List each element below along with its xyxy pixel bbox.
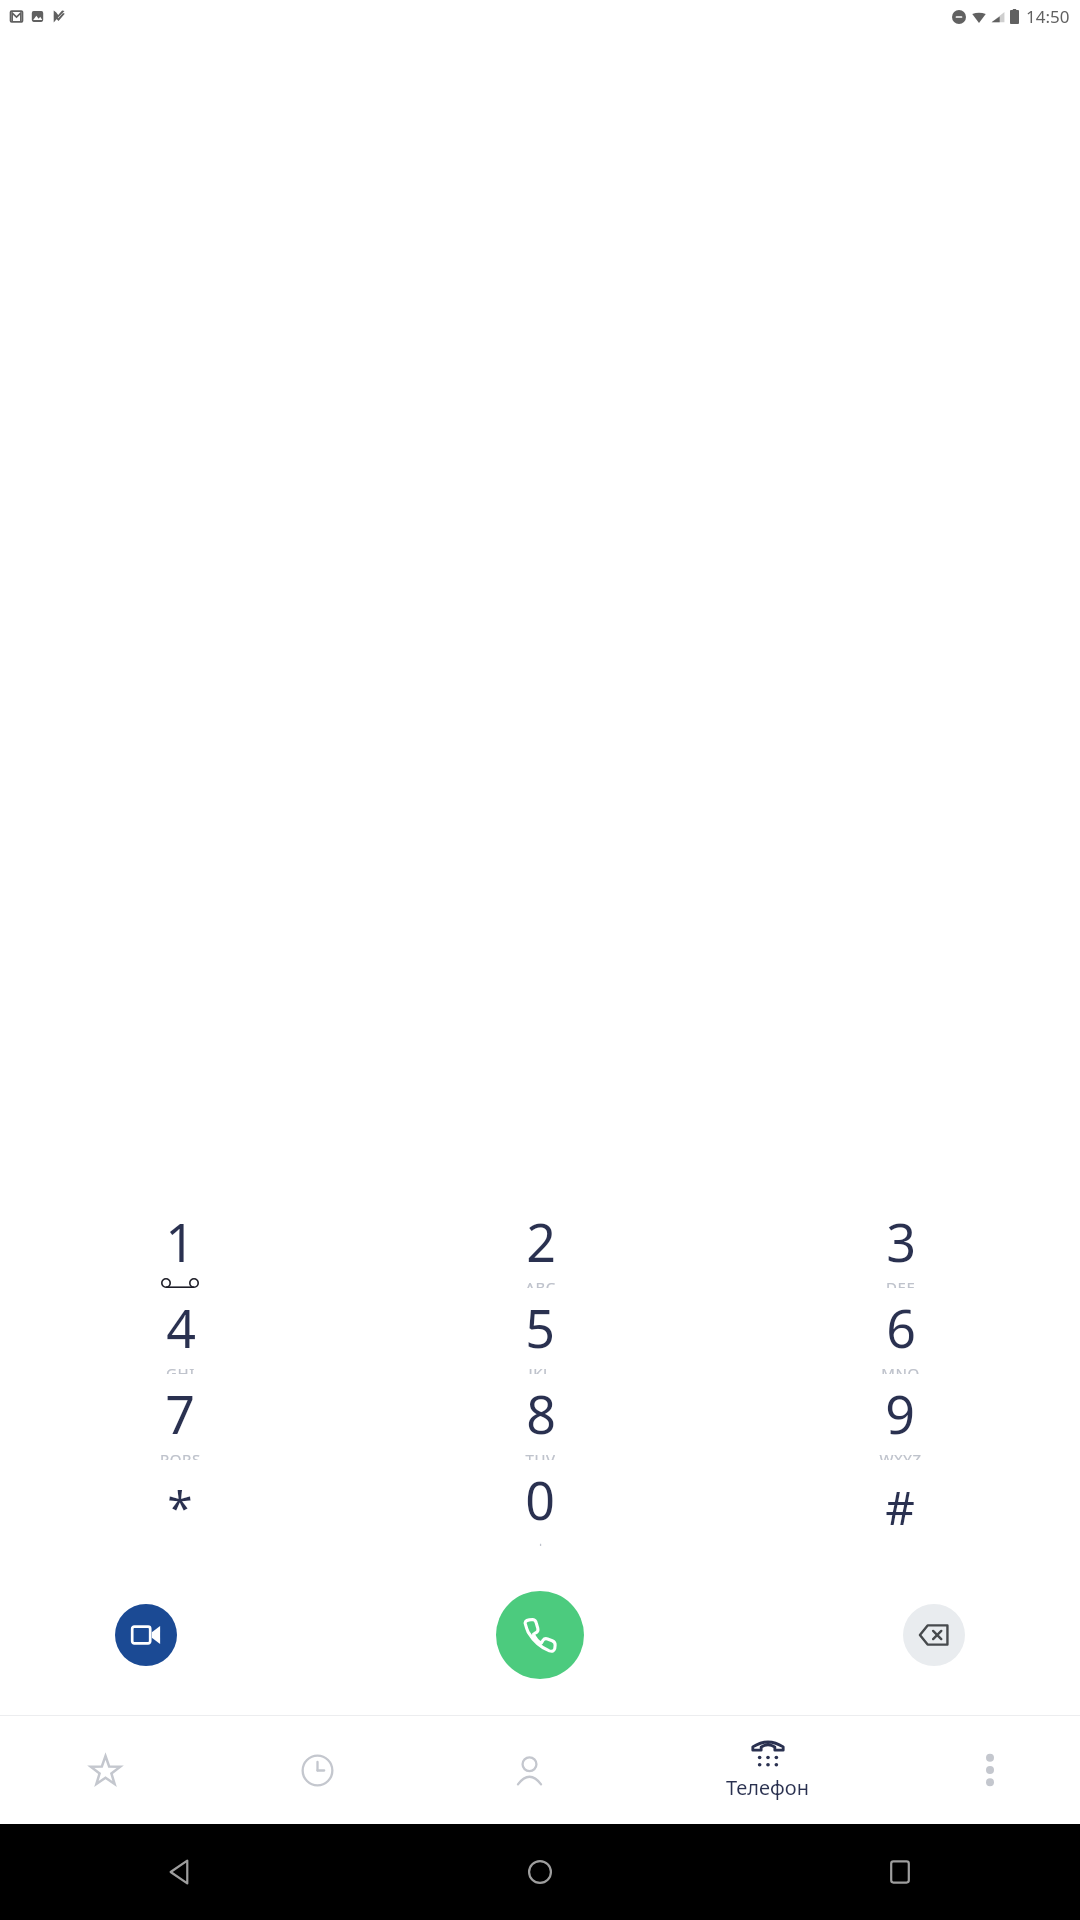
staticText: PQRS: [160, 1449, 201, 1460]
staticText: GHI: [166, 1363, 195, 1374]
staticText: 6: [886, 1292, 916, 1363]
staticText: Телефон: [726, 1774, 809, 1801]
button[interactable]: Video call: [115, 1604, 177, 1666]
button[interactable]: Back: [0, 1824, 360, 1920]
staticText: MNO: [881, 1363, 920, 1374]
button[interactable]: 2: [360, 1202, 720, 1288]
staticText: #: [885, 1476, 915, 1539]
staticText: +: [536, 1537, 545, 1546]
button[interactable]: 8: [360, 1374, 720, 1460]
staticText: 14:50: [1026, 5, 1070, 28]
button[interactable]: #: [720, 1460, 1080, 1546]
button[interactable]: *: [0, 1460, 360, 1546]
staticText: 1: [165, 1206, 195, 1277]
button[interactable]: Recents: [211, 1716, 423, 1824]
button[interactable]: Recents: [720, 1824, 1080, 1920]
staticText: 2: [526, 1206, 556, 1277]
button[interactable]: Телефон: [635, 1716, 900, 1824]
button[interactable]: 1: [0, 1202, 360, 1288]
staticText: 8: [526, 1378, 556, 1449]
staticText: 3: [886, 1206, 916, 1277]
button[interactable]: 9: [720, 1374, 1080, 1460]
staticText: 9: [885, 1378, 915, 1449]
button[interactable]: 6: [720, 1288, 1080, 1374]
button[interactable]: More options: [900, 1716, 1080, 1824]
staticText: JKL: [528, 1363, 552, 1374]
button[interactable]: 4: [0, 1288, 360, 1374]
staticText: WXYZ: [879, 1449, 922, 1460]
staticText: TUV: [525, 1449, 556, 1460]
staticText: ABC: [525, 1277, 556, 1288]
button[interactable]: 7: [0, 1374, 360, 1460]
button[interactable]: 3: [720, 1202, 1080, 1288]
staticText: DEF: [886, 1277, 915, 1288]
button[interactable]: 0: [360, 1460, 720, 1546]
button[interactable]: 5: [360, 1288, 720, 1374]
staticText: 5: [525, 1292, 555, 1363]
button[interactable]: Contacts: [423, 1716, 635, 1824]
staticText: *: [167, 1476, 193, 1539]
button[interactable]: Favourites: [0, 1716, 211, 1824]
staticText: 7: [165, 1378, 195, 1449]
button[interactable]: Home: [360, 1824, 720, 1920]
staticText: 4: [166, 1292, 196, 1363]
staticText: 0: [525, 1464, 555, 1535]
button[interactable]: Call: [496, 1591, 584, 1679]
button[interactable]: Backspace: [903, 1604, 965, 1666]
